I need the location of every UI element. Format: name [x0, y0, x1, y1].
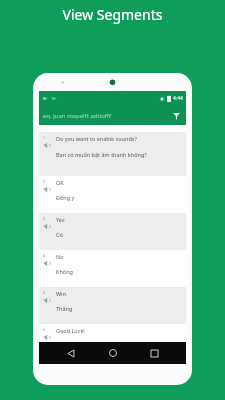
button[interactable]: 5: [39, 287, 186, 324]
staticText: 2: [43, 179, 46, 184]
staticText: No: [56, 253, 64, 260]
staticText: Đồng ý: [56, 194, 75, 201]
button[interactable]: Recents: [144, 343, 164, 363]
button[interactable]: Home: [103, 343, 123, 363]
staticText: Có: [56, 231, 63, 238]
staticText: Do you want to enable sounds?: [56, 135, 137, 142]
staticText: Yes: [56, 216, 65, 223]
button[interactable]: 2: [39, 176, 186, 213]
staticText: Win: [56, 290, 66, 297]
staticText: 4: [43, 253, 46, 258]
staticText: 3: [43, 216, 46, 221]
staticText: Good Luck!: [56, 327, 85, 334]
staticText: OK: [56, 179, 64, 186]
button[interactable]: 1: [39, 132, 186, 176]
staticText: Bạn có muốn bật âm thanh không?: [56, 151, 147, 158]
staticText: Thắng: [56, 305, 73, 312]
staticText: 4:44: [173, 95, 183, 102]
staticText: 6: [43, 327, 46, 332]
staticText: View Segments: [0, 5, 225, 24]
staticText: eq. juan rospelft adtiofff: [43, 112, 170, 120]
button[interactable]: Back: [61, 343, 81, 363]
button[interactable]: 3: [39, 213, 186, 250]
staticText: 1: [43, 135, 46, 140]
button[interactable]: Filter: [170, 110, 182, 122]
button[interactable]: 6: [39, 324, 186, 342]
staticText: Không: [56, 268, 73, 275]
button[interactable]: 4: [39, 250, 186, 287]
staticText: 5: [43, 290, 46, 295]
